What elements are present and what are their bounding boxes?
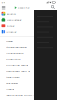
staticText: 9:41 bbox=[1, 1, 5, 4]
button[interactable]: Aboneliklerim bbox=[0, 50, 34, 56]
button[interactable]: Hesap bbox=[0, 38, 34, 44]
button[interactable]: Close navigation drawer bbox=[1, 5, 6, 10]
button[interactable]: Kullanılan kodlar bbox=[0, 62, 34, 68]
staticText: Yardım ve geri bildirim bbox=[6, 93, 34, 97]
staticText: Kullanılan kodlar bbox=[6, 63, 28, 67]
button[interactable]: İstek listem bbox=[0, 74, 34, 80]
staticText: Aboneliklerim bbox=[6, 51, 23, 55]
button[interactable]: Ayarlar bbox=[0, 86, 34, 92]
staticText: Uygulamalar bbox=[7, 18, 22, 21]
button[interactable]: Play Protect bbox=[0, 80, 34, 86]
staticText: Ödeme yöntemleri bbox=[6, 45, 27, 49]
staticText: Kitaplığım bbox=[6, 57, 20, 61]
staticText: Hesap bbox=[6, 39, 13, 43]
button[interactable]: Yardım ve geri bildirim bbox=[0, 92, 34, 98]
button[interactable]: Kitaplar bbox=[0, 29, 34, 35]
staticText: İstek listem bbox=[6, 75, 19, 79]
staticText: Eğlence bbox=[7, 12, 16, 15]
staticText: Ayarlar bbox=[6, 87, 14, 91]
staticText: Kitaplar bbox=[7, 30, 17, 33]
button[interactable]: Kitaplığım bbox=[0, 56, 34, 62]
button[interactable]: Ödeme yöntemleri bbox=[0, 44, 34, 50]
button[interactable]: Hediye kartı satın al bbox=[0, 68, 34, 74]
staticText: Google Play bbox=[17, 6, 29, 9]
staticText: Filmler bbox=[7, 24, 15, 27]
button[interactable]: Filmler bbox=[0, 23, 34, 29]
staticText: Hediye kartı satın al bbox=[6, 69, 30, 73]
button[interactable]: Eğlence bbox=[0, 11, 34, 17]
button[interactable]: Uygulamalar bbox=[0, 17, 34, 23]
staticText: Play Protect bbox=[6, 81, 18, 85]
button[interactable]: Search bbox=[51, 1, 57, 9]
